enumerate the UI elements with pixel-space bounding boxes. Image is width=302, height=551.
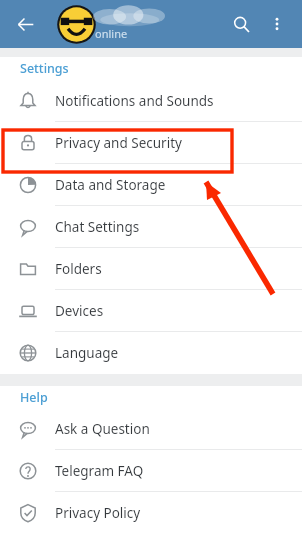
staticText: Devices <box>55 302 104 320</box>
button[interactable]: Notifications and Sounds <box>0 80 302 122</box>
staticText: Folders <box>55 260 102 278</box>
button[interactable]: More options <box>261 8 293 40</box>
button[interactable]: Back <box>10 9 40 39</box>
staticText: Chat Settings <box>55 218 140 236</box>
button[interactable]: Folders <box>0 248 302 290</box>
button[interactable]: Data and Storage <box>0 164 302 206</box>
staticText: Telegram FAQ <box>55 462 144 480</box>
staticText: Help <box>20 389 48 406</box>
staticText: Privacy Policy <box>55 504 141 522</box>
staticText: Ask a Question <box>55 420 150 438</box>
staticText: Settings <box>20 60 69 77</box>
button[interactable]: Privacy and Security <box>0 122 302 164</box>
button[interactable]: Chat Settings <box>0 206 302 248</box>
button[interactable]: Ask a Question <box>0 408 302 450</box>
staticText: Language <box>55 344 119 362</box>
staticText: online <box>95 26 128 41</box>
button[interactable]: Language <box>0 332 302 374</box>
staticText: Data and Storage <box>55 176 166 194</box>
button[interactable]: Devices <box>0 290 302 332</box>
button[interactable]: Search <box>225 8 257 40</box>
button[interactable]: Telegram FAQ <box>0 450 302 492</box>
staticText: Notifications and Sounds <box>55 92 214 110</box>
staticText: Privacy and Security <box>55 134 182 152</box>
button[interactable]: Privacy Policy <box>0 492 302 534</box>
